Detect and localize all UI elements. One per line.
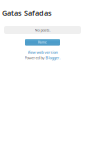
button[interactable]: View web version <box>0 49 85 55</box>
staticText: Blogger <box>45 55 59 60</box>
staticText: Gatas Safadas <box>2 8 52 18</box>
staticText: View web version <box>27 49 57 55</box>
button[interactable]: Home <box>25 39 60 45</box>
button[interactable]: Blogger <box>45 55 59 60</box>
staticText: Powered by <box>24 55 45 60</box>
staticText: No posts. <box>34 27 50 33</box>
staticText: Home <box>38 40 47 44</box>
